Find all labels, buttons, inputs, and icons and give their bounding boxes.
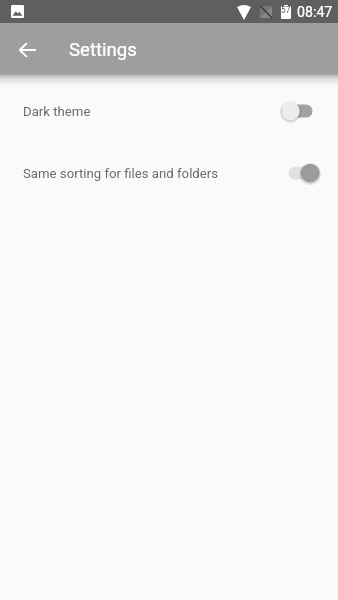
button[interactable]: Back [7,30,47,70]
staticText: 57 [281,5,291,15]
staticText: Same sorting for files and folders [23,166,219,181]
button[interactable]: Same sorting for files and folders [0,142,338,204]
staticText: Dark theme [23,104,91,119]
button[interactable]: Dark theme [0,80,338,142]
staticText: Settings [69,39,137,61]
staticText: 08:47 [297,4,333,21]
